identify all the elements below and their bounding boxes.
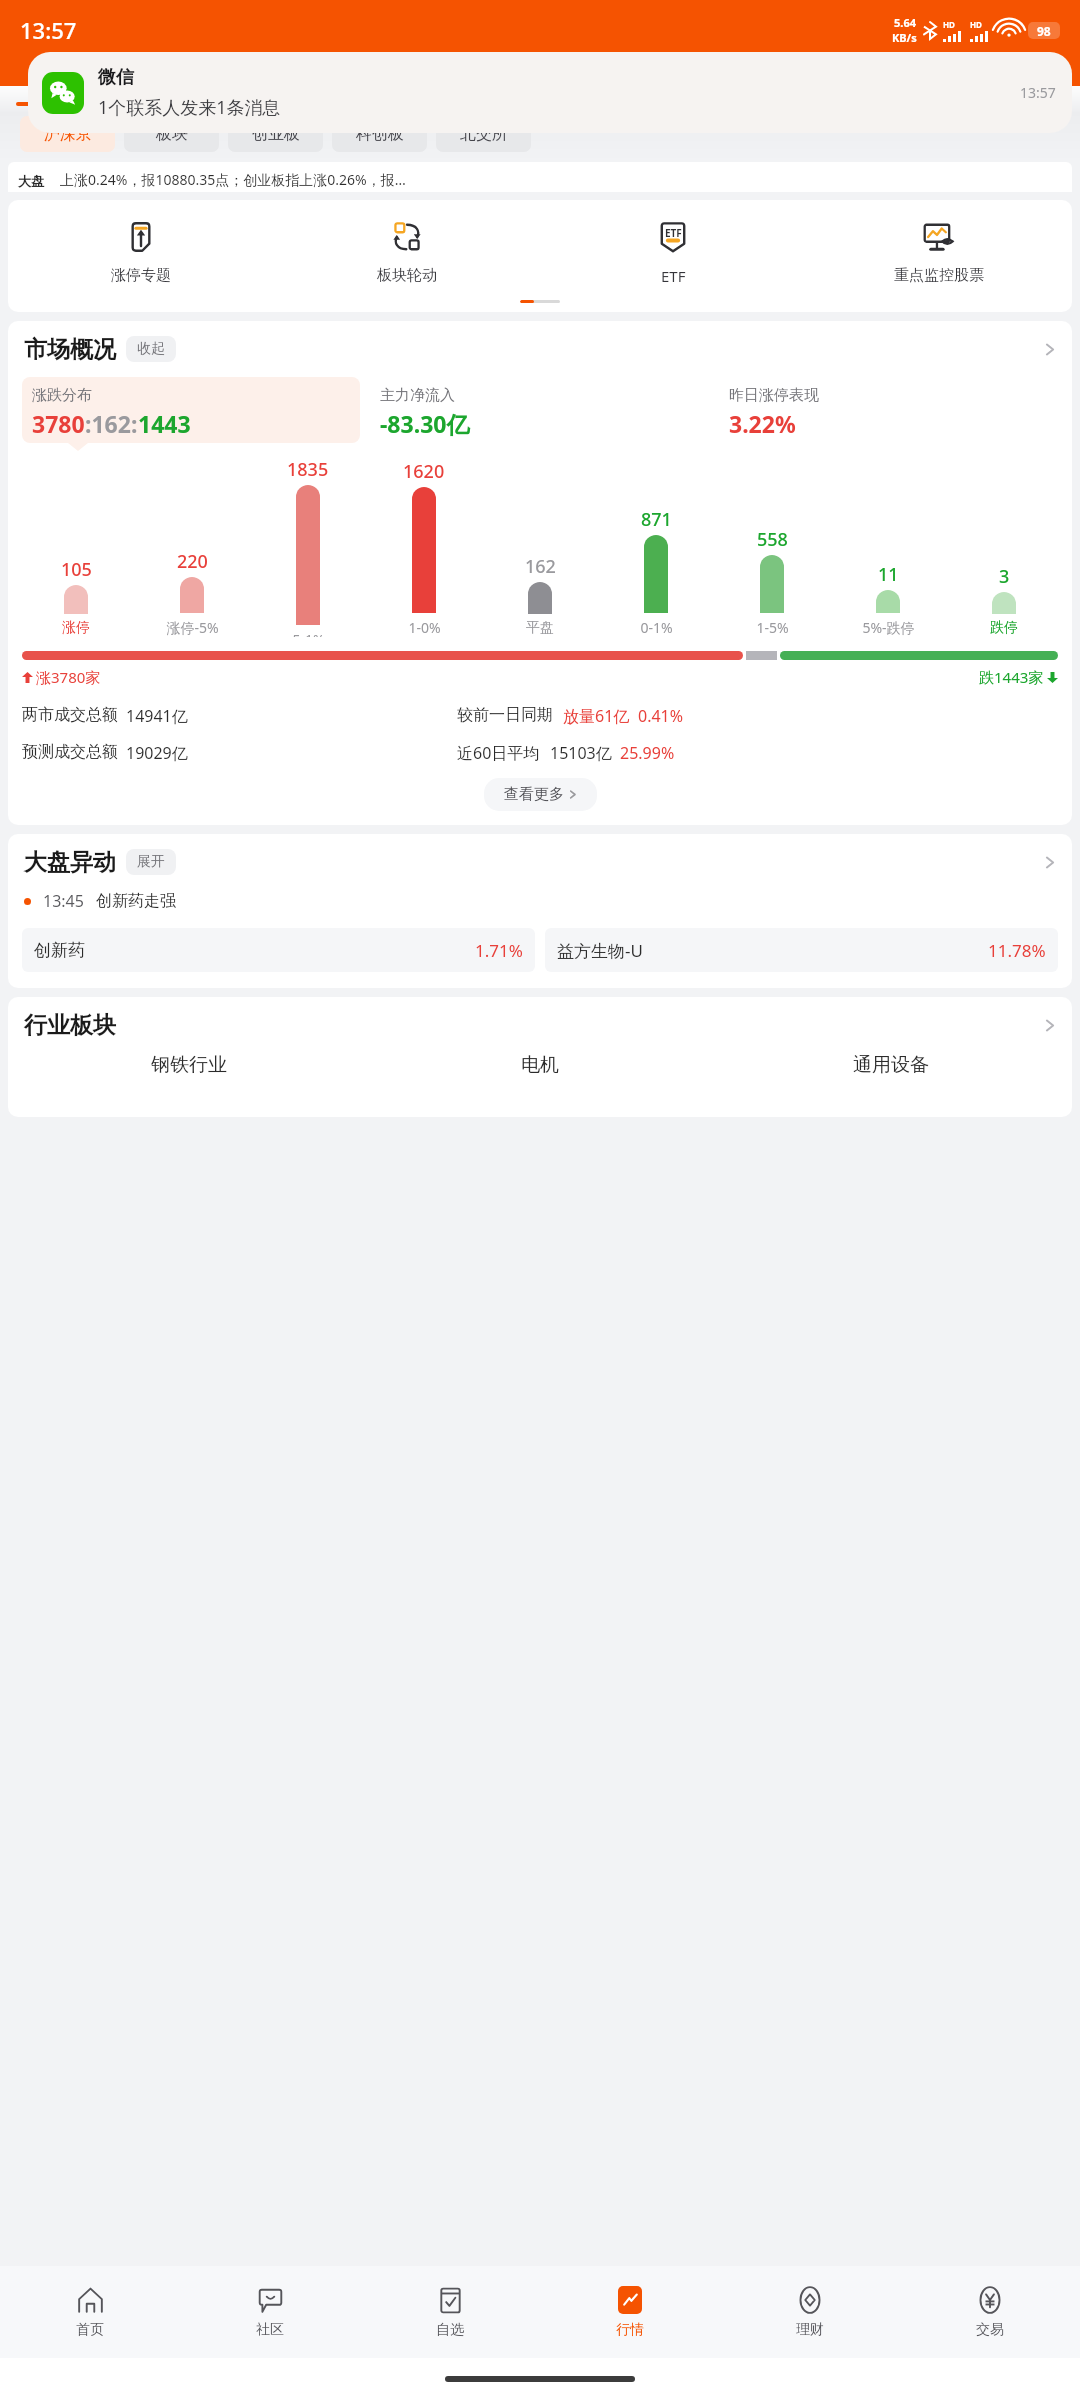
staticText: 钢铁行业	[151, 1053, 227, 1077]
staticText: 预测成交总额	[22, 742, 118, 762]
staticText: 科创板	[356, 124, 404, 144]
button[interactable]: 涨停专题	[8, 218, 274, 285]
staticText: 近60日平均	[457, 742, 540, 764]
staticText: 558	[757, 527, 788, 552]
button[interactable]: 涨跌分布	[22, 377, 360, 443]
staticText: 涨3780家	[36, 667, 101, 687]
staticText: 3	[999, 564, 1010, 589]
staticText: 11	[878, 562, 899, 587]
staticText: 展开	[137, 853, 165, 871]
staticText: 查看更多	[504, 785, 564, 804]
button[interactable]: 创新药	[22, 928, 535, 972]
staticText: KB/s	[892, 30, 917, 45]
staticText: 涨停专题	[111, 266, 171, 285]
staticText: 1620	[403, 459, 445, 484]
button[interactable]: 板块轮动	[274, 218, 540, 285]
staticText: 19029亿	[126, 742, 188, 764]
staticText: 放量61亿	[563, 705, 630, 727]
other: 板块轮动	[390, 220, 424, 254]
staticText: 平盘	[526, 619, 554, 637]
button[interactable]: 理财	[720, 2266, 900, 2358]
staticText: 162	[525, 554, 556, 579]
staticText: 社区	[256, 2321, 284, 2339]
staticText: 1443	[138, 408, 191, 439]
staticText: 主力净流入	[380, 386, 455, 405]
staticText: 220	[177, 549, 208, 574]
staticText: 上涨0.24%，报10880.35点；创业板指上涨0.26%，报…	[60, 170, 406, 189]
other: 交易	[976, 2286, 1004, 2314]
staticText: 1.71%	[475, 939, 523, 962]
other: ETF	[656, 220, 690, 254]
button[interactable]: 自选	[360, 2266, 540, 2358]
staticText: 北交所	[460, 124, 508, 144]
staticText: 市场概况	[24, 335, 116, 364]
staticText: 3780	[32, 408, 85, 439]
button[interactable]: 创业板	[228, 116, 323, 152]
staticText: 两市成交总额	[22, 705, 118, 725]
button[interactable]: 大盘	[8, 162, 1072, 192]
other: 首页	[77, 2287, 104, 2314]
button[interactable]: 昨日涨停表现	[719, 377, 1058, 443]
staticText: 板块	[156, 124, 188, 144]
button[interactable]: 行情	[540, 2266, 720, 2358]
staticText: 首页	[76, 2321, 104, 2339]
button[interactable]: 沪深京	[20, 116, 115, 152]
button[interactable]: 北交所	[436, 116, 531, 152]
button[interactable]: 首页	[0, 2266, 180, 2358]
staticText: 5-1%	[292, 630, 325, 637]
button[interactable]: 微信	[28, 52, 1072, 133]
staticText: 跌1443家	[979, 667, 1044, 687]
staticText: 重点监控股票	[894, 266, 984, 285]
button[interactable]: 行业板块	[8, 997, 1072, 1053]
staticText: -83.30亿	[380, 408, 470, 439]
button[interactable]: 科创板	[332, 116, 427, 152]
staticText: 1个联系人发来1条消息	[98, 95, 281, 120]
staticText: 1-0%	[408, 618, 441, 637]
staticText: 创新药走强	[96, 891, 176, 911]
button[interactable]: 板块	[124, 116, 219, 152]
staticText: 871	[641, 507, 672, 532]
button[interactable]: 市场概况	[8, 321, 1072, 377]
staticText: 0-1%	[640, 618, 673, 637]
staticText: 5.64	[894, 15, 916, 30]
staticText: 创业板	[252, 124, 300, 144]
button[interactable]: 重点监控股票	[806, 218, 1072, 285]
staticText: 微信	[98, 66, 134, 89]
button[interactable]: 大盘异动	[8, 834, 1072, 890]
staticText: 理财	[796, 2321, 824, 2339]
staticText: 大盘	[18, 173, 44, 189]
button[interactable]: 交易	[900, 2266, 1080, 2358]
staticText: 13:57	[1020, 83, 1056, 102]
button[interactable]: 查看更多	[484, 778, 597, 811]
other: 社区	[257, 2287, 284, 2314]
button[interactable]: 社区	[180, 2266, 360, 2358]
staticText: 跌停	[990, 619, 1018, 637]
staticText: ETF	[665, 226, 682, 240]
staticText: 通用设备	[853, 1053, 929, 1077]
staticText: 13:45	[43, 890, 84, 912]
staticText: 涨停	[62, 619, 90, 637]
staticText: HD	[970, 19, 982, 30]
staticText: 涨跌分布	[32, 386, 92, 405]
other: 自选	[437, 2287, 464, 2314]
staticText: 大盘异动	[24, 848, 116, 877]
staticText: ETF	[661, 266, 686, 286]
staticText: 行业板块	[24, 1011, 116, 1040]
other: 理财	[796, 2286, 824, 2314]
staticText: HD	[943, 19, 955, 30]
staticText: 涨停-5%	[166, 618, 219, 637]
staticText: 板块轮动	[377, 266, 437, 285]
staticText: 15103亿	[550, 742, 612, 764]
staticText: 0.41%	[638, 705, 684, 727]
staticText: 创新药	[34, 940, 85, 961]
button[interactable]: 益方生物-U	[545, 928, 1058, 972]
button[interactable]: ETF	[540, 218, 806, 286]
staticText: 105	[61, 557, 92, 582]
button[interactable]: 主力净流入	[370, 377, 709, 443]
staticText: 3.22%	[729, 408, 796, 439]
staticText: 自选	[436, 2321, 464, 2339]
staticText: 98	[1037, 23, 1051, 39]
staticText: 电机	[521, 1053, 559, 1077]
other: 行情	[618, 2286, 642, 2314]
staticText: 11.78%	[988, 939, 1046, 962]
